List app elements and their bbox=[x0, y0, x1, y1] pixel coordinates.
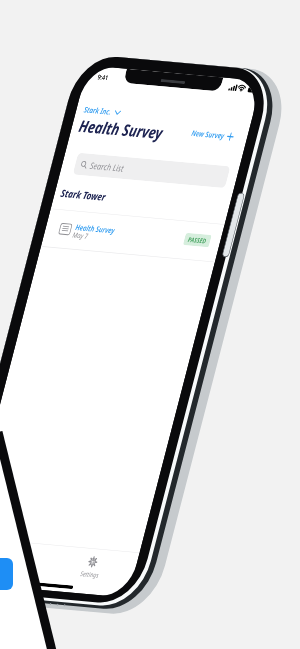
staticText: May 7 bbox=[72, 230, 89, 241]
staticText: New Survey bbox=[190, 127, 226, 141]
staticText: Search List bbox=[89, 159, 126, 174]
staticText: Settings bbox=[79, 569, 100, 579]
other: Home bbox=[0, 549, 11, 559]
staticText: Stark Tower bbox=[59, 186, 107, 204]
staticText: PASSED bbox=[187, 235, 208, 245]
button[interactable]: Search List bbox=[73, 153, 231, 188]
button[interactable]: Settings bbox=[45, 546, 139, 582]
other: Settings bbox=[87, 556, 99, 567]
staticText: Health Survey bbox=[74, 222, 116, 236]
button[interactable]: Stark Inc. bbox=[83, 104, 122, 118]
staticText: Stark Inc. bbox=[83, 104, 113, 117]
staticText: 9:41 bbox=[97, 72, 109, 82]
button[interactable]: Home bbox=[0, 538, 52, 575]
staticText: Health Survey bbox=[77, 115, 165, 144]
button[interactable]: Health Survey bbox=[41, 209, 224, 262]
button[interactable]: New Survey bbox=[190, 127, 235, 142]
